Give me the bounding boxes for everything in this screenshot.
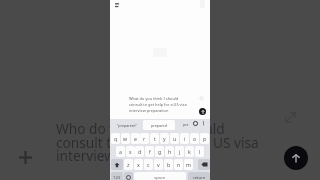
staticText: s xyxy=(129,148,132,155)
button[interactable]: x xyxy=(134,159,143,170)
button[interactable]: a xyxy=(116,146,125,157)
button[interactable]: c xyxy=(144,159,153,170)
button[interactable]: Emoji xyxy=(124,172,133,180)
staticText: v xyxy=(157,161,160,168)
staticText: pre xyxy=(183,122,189,127)
staticText: What do you think I should xyxy=(129,96,179,101)
staticText: u xyxy=(173,135,177,142)
button[interactable]: Send message xyxy=(199,108,206,115)
staticText: n xyxy=(177,161,181,168)
button[interactable]: “preparent” xyxy=(112,120,142,131)
button[interactable]: u xyxy=(170,133,179,144)
staticText: x xyxy=(137,161,140,168)
button[interactable]: h xyxy=(165,146,174,157)
staticText: h xyxy=(168,148,172,155)
staticText: interview preparation xyxy=(129,108,169,113)
button[interactable]: i xyxy=(180,133,189,144)
staticText: k xyxy=(188,148,191,155)
staticText: q xyxy=(114,135,118,142)
staticText: interview preparation xyxy=(56,146,195,165)
staticText: “preparent” xyxy=(117,123,137,128)
button[interactable]: d xyxy=(135,146,144,157)
button[interactable]: return xyxy=(188,172,210,180)
button[interactable]: l xyxy=(195,146,204,157)
staticText: d xyxy=(138,148,142,155)
button[interactable]: Shift xyxy=(111,159,123,170)
staticText: a xyxy=(119,148,122,155)
staticText: consult to get help for a US visa xyxy=(129,102,187,107)
staticText: l xyxy=(199,148,201,155)
button[interactable]: Add xyxy=(16,148,35,167)
button[interactable]: m xyxy=(184,159,193,170)
staticText: z xyxy=(127,161,130,168)
staticText: c xyxy=(147,161,150,168)
button[interactable]: space xyxy=(134,172,186,180)
button[interactable]: b xyxy=(164,159,173,170)
button[interactable]: g xyxy=(155,146,164,157)
staticText: r xyxy=(143,135,146,142)
staticText: 123 xyxy=(113,175,121,180)
staticText: Who do you think I should xyxy=(56,119,225,138)
button[interactable]: p xyxy=(200,133,209,144)
staticText: w xyxy=(123,135,128,142)
staticText: g xyxy=(158,148,162,155)
staticText: f xyxy=(149,148,151,155)
staticText: prepared xyxy=(151,123,167,128)
staticText: space xyxy=(154,175,166,180)
staticText: y xyxy=(163,135,166,142)
staticText: return xyxy=(193,175,206,180)
button[interactable]: w xyxy=(121,133,130,144)
button[interactable]: f xyxy=(145,146,154,157)
button[interactable]: Backspace xyxy=(198,159,210,170)
staticText: e xyxy=(134,135,137,142)
staticText: o xyxy=(193,135,197,142)
button[interactable]: t xyxy=(150,133,159,144)
staticText: t xyxy=(154,135,156,142)
button[interactable]: q xyxy=(111,133,120,144)
staticText: b xyxy=(167,161,171,168)
staticText: j xyxy=(179,148,181,155)
button[interactable]: Expand xyxy=(282,109,299,126)
button[interactable]: v xyxy=(154,159,163,170)
staticText: consult to get help for a US visa xyxy=(56,133,259,152)
staticText: p xyxy=(203,135,207,142)
button[interactable]: o xyxy=(190,133,199,144)
button[interactable]: n xyxy=(174,159,183,170)
button[interactable]: 123 xyxy=(111,172,123,180)
button[interactable]: Menu xyxy=(112,0,123,11)
button[interactable]: k xyxy=(185,146,194,157)
staticText: i xyxy=(184,135,186,142)
button[interactable]: s xyxy=(126,146,135,157)
button[interactable]: r xyxy=(140,133,149,144)
button[interactable]: j xyxy=(175,146,184,157)
button[interactable]: Send xyxy=(284,146,308,170)
button[interactable]: z xyxy=(124,159,133,170)
staticText: m xyxy=(186,161,191,168)
button[interactable]: prepared xyxy=(143,120,175,130)
button[interactable]: e xyxy=(131,133,140,144)
button[interactable]: y xyxy=(160,133,169,144)
